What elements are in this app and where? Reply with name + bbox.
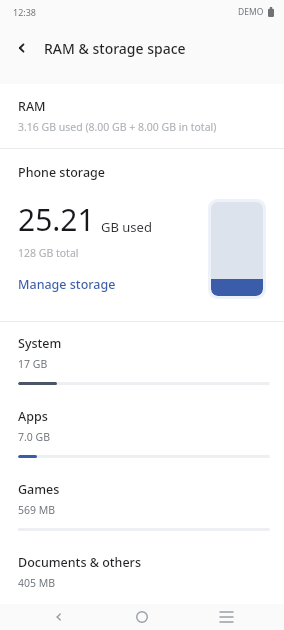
button[interactable]: Recents: [201, 604, 251, 630]
button[interactable]: System: [0, 322, 284, 395]
staticText: Manage storage: [18, 276, 116, 293]
staticText: 12:38: [13, 6, 37, 18]
staticText: 128 GB total: [18, 246, 79, 260]
staticText: 569 MB: [18, 503, 56, 517]
staticText: Documents & others: [18, 554, 141, 571]
staticText: RAM: [18, 98, 46, 115]
staticText: System: [18, 335, 62, 352]
button[interactable]: Manage storage: [18, 276, 116, 293]
staticText: DEMO: [238, 6, 264, 18]
button[interactable]: Back: [34, 604, 84, 630]
staticText: 17 GB: [18, 357, 48, 371]
staticText: 7.0 GB: [18, 430, 51, 444]
staticText: 3.16 GB used (8.00 GB + 8.00 GB in total…: [18, 120, 217, 134]
staticText: Phone storage: [18, 164, 105, 181]
staticText: 405 MB: [18, 576, 56, 590]
staticText: Games: [18, 481, 60, 498]
button[interactable]: Back: [0, 26, 44, 70]
button[interactable]: Games: [0, 468, 284, 541]
staticText: 25.21: [18, 199, 95, 240]
staticText: GB used: [101, 218, 152, 236]
staticText: Apps: [18, 408, 48, 425]
staticText: RAM & storage space: [44, 39, 186, 58]
button[interactable]: Apps: [0, 395, 284, 468]
button[interactable]: Documents & others: [0, 541, 284, 604]
button[interactable]: RAM: [0, 84, 284, 148]
button[interactable]: Home: [117, 604, 167, 630]
